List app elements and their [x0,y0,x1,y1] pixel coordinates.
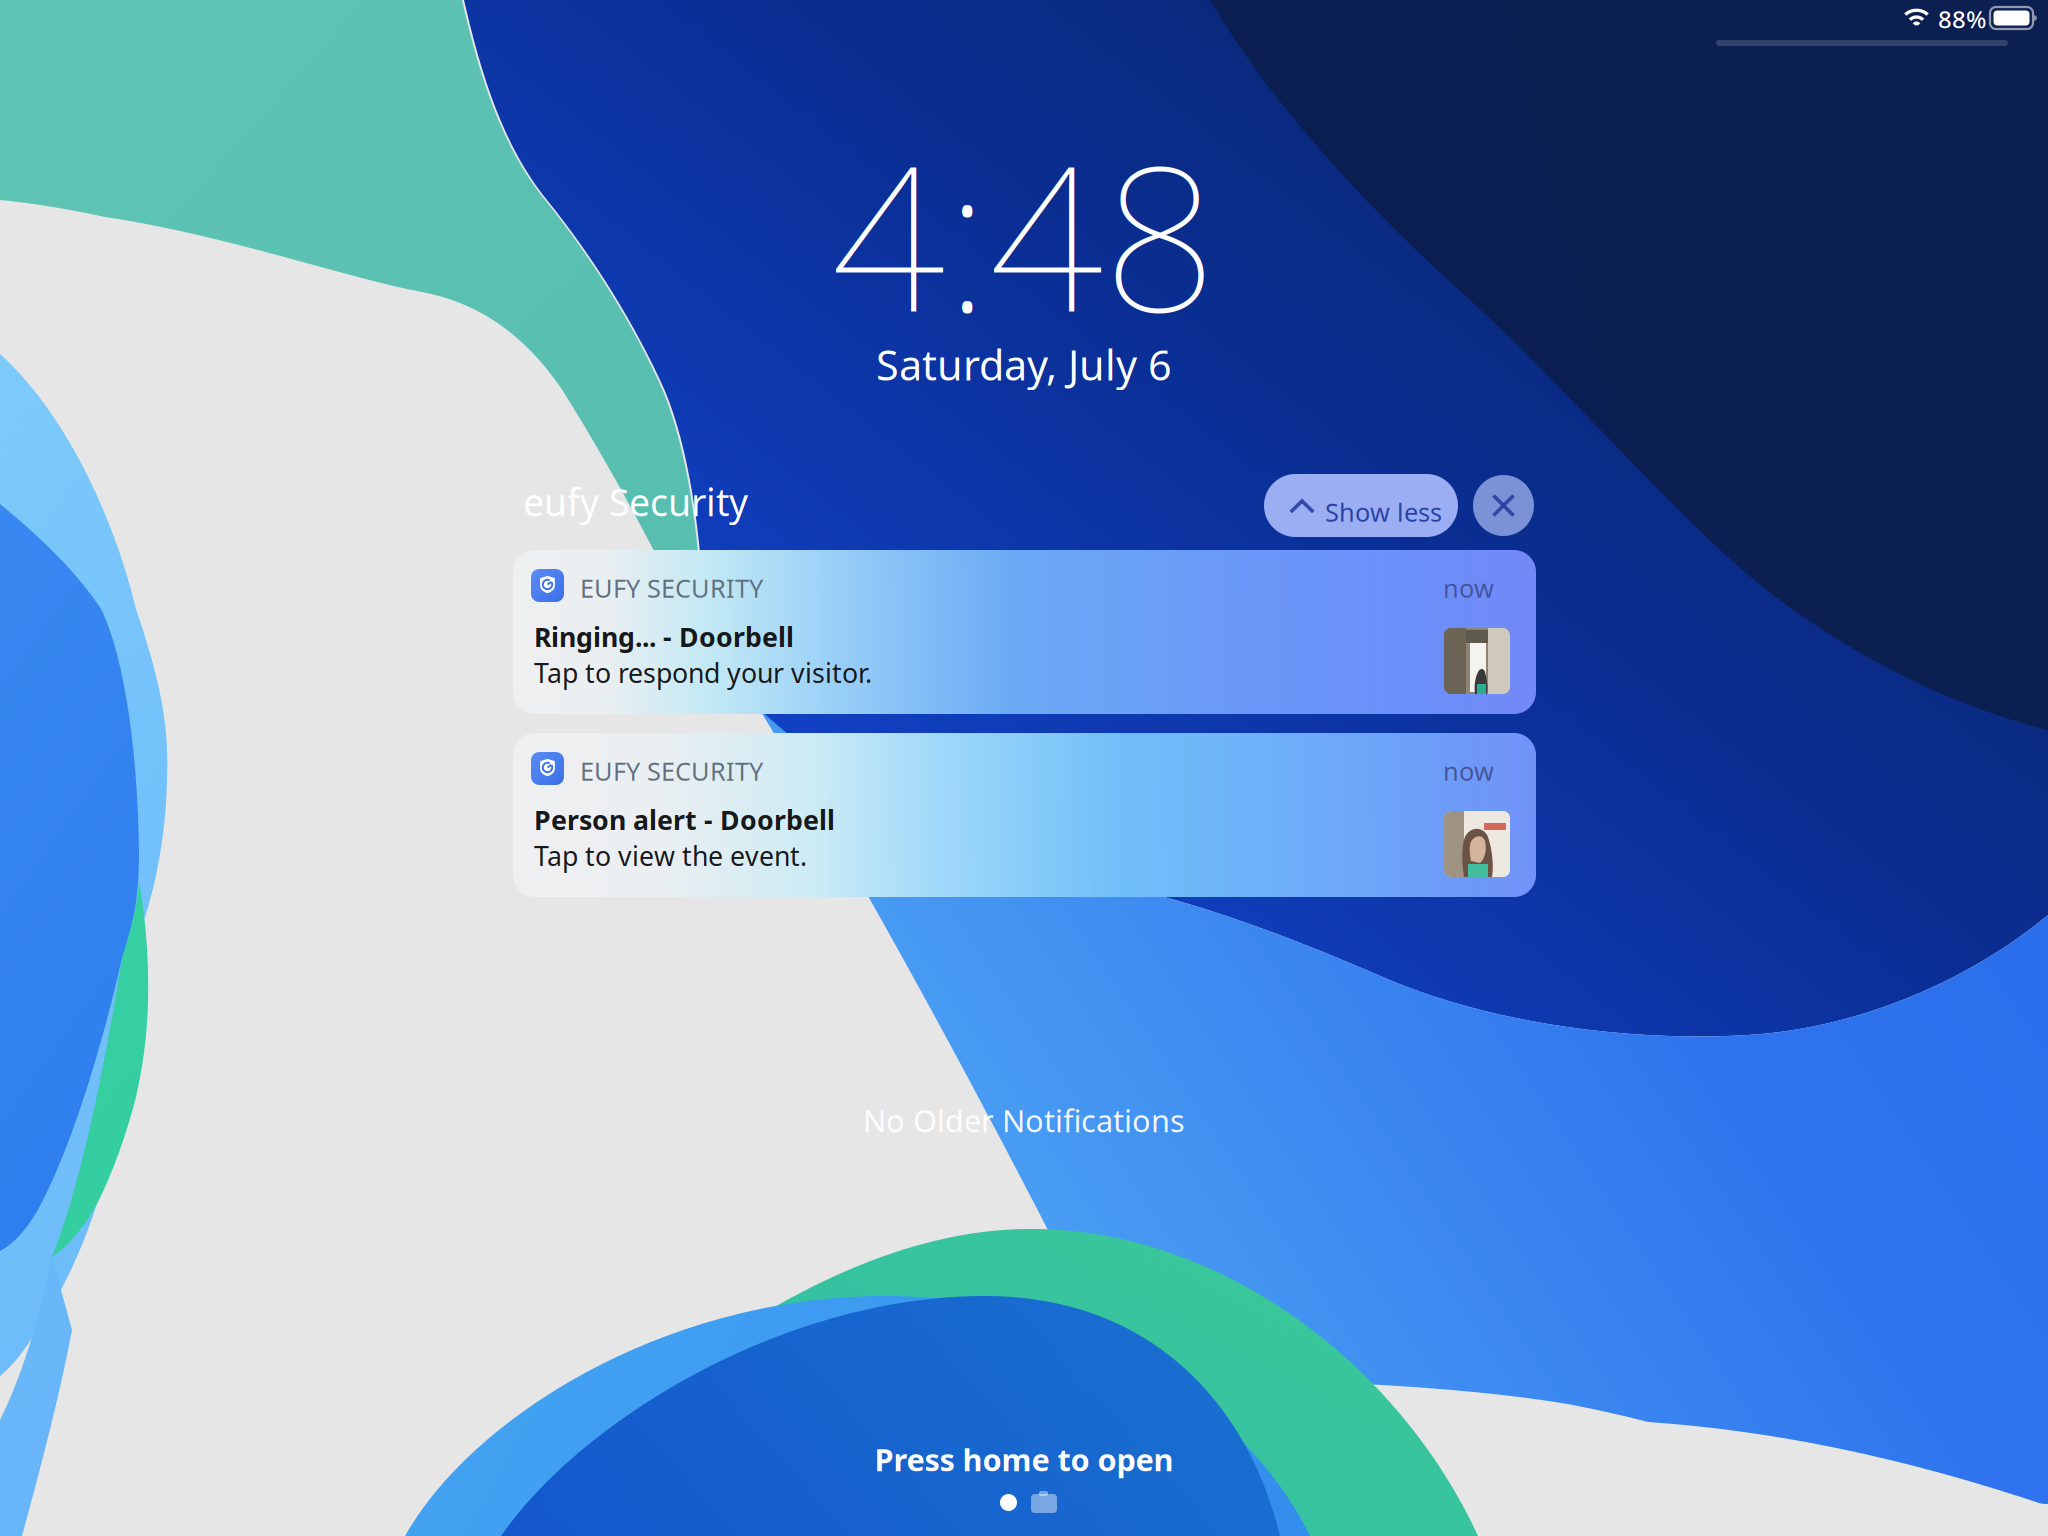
staticText: Tap to view the event. [534,838,807,873]
staticText: now [1443,754,1494,788]
staticText: Press home to open [874,1439,1173,1480]
staticText: 88% [1938,3,1986,35]
staticText: EUFY SECURITY [580,754,763,788]
staticText: Saturday, July 6 [876,337,1172,392]
staticText: eufy Security [523,477,748,527]
staticText: Person alert - Doorbell [534,802,835,837]
button[interactable]: Show less [1264,474,1458,537]
button[interactable]: Clear notifications [1473,475,1534,536]
staticText: EUFY SECURITY [580,571,763,605]
button[interactable]: EUFY SECURITY [513,733,1536,897]
staticText: now [1443,571,1494,605]
staticText: Show less [1325,495,1442,529]
staticText: Tap to respond your visitor. [534,655,872,690]
staticText: Ringing... - Doorbell [534,619,794,654]
staticText: No Older Notifications [863,1100,1185,1141]
staticText: 4:48 [831,101,1217,367]
button[interactable]: EUFY SECURITY [513,550,1536,714]
